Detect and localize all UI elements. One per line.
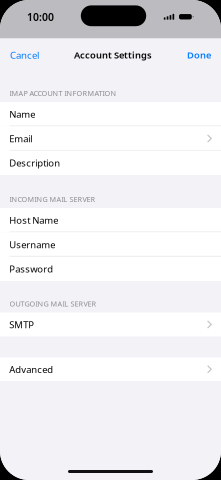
button[interactable]: Password bbox=[0, 257, 221, 281]
button[interactable]: Done bbox=[187, 49, 211, 61]
staticText: Advanced bbox=[9, 363, 53, 376]
staticText: 10:00 bbox=[27, 10, 54, 24]
staticText: Done bbox=[187, 49, 211, 61]
button[interactable]: SMTP bbox=[0, 312, 221, 336]
staticText: INCOMING MAIL SERVER bbox=[10, 194, 96, 204]
button[interactable]: Cancel bbox=[10, 48, 39, 62]
staticText: Host Name bbox=[9, 214, 58, 227]
button[interactable]: Host Name bbox=[0, 208, 221, 232]
staticText: Name bbox=[9, 108, 35, 121]
staticText: Password bbox=[9, 262, 53, 275]
staticText: Cancel bbox=[10, 48, 39, 62]
staticText: Description bbox=[9, 156, 60, 169]
staticText: Username bbox=[9, 238, 55, 251]
staticText: IMAP ACCOUNT INFORMATION bbox=[10, 88, 117, 98]
button[interactable]: Email bbox=[0, 126, 221, 151]
button[interactable]: Description bbox=[0, 151, 221, 175]
staticText: OUTGOING MAIL SERVER bbox=[10, 299, 97, 309]
staticText: Email bbox=[9, 132, 32, 145]
staticText: Account Settings bbox=[74, 49, 152, 61]
button[interactable]: Name bbox=[0, 102, 221, 126]
button[interactable]: Username bbox=[0, 232, 221, 257]
button[interactable]: Advanced bbox=[0, 357, 221, 381]
staticText: SMTP bbox=[9, 318, 34, 331]
